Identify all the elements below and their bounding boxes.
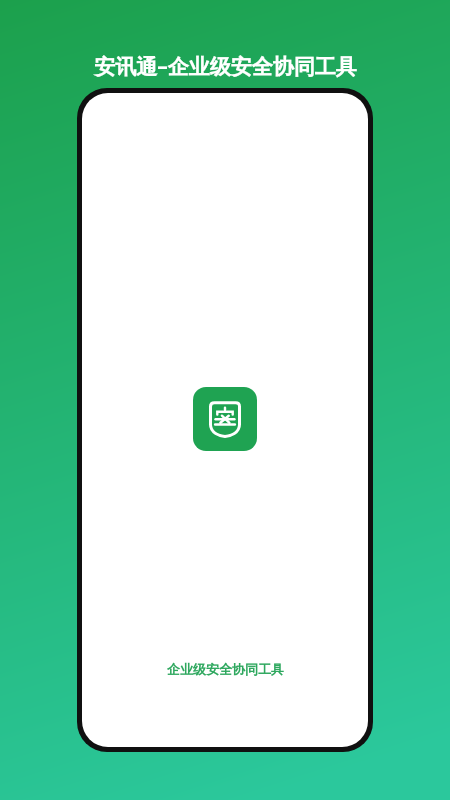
button[interactable]: 安讯通 应用图标	[193, 387, 257, 451]
staticText: 安讯通–企业级安全协同工具	[94, 52, 357, 81]
staticText: 企业级安全协同工具	[167, 661, 284, 677]
